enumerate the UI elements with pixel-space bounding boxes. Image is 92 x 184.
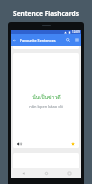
- button[interactable]: Play audio: [15, 140, 22, 147]
- staticText: Favourite Sentences: [20, 38, 56, 43]
- staticText: นั่นเป็นข่าวดี: [32, 93, 61, 101]
- button[interactable]: Recents: [58, 168, 81, 178]
- button[interactable]: Back: [11, 168, 35, 178]
- button[interactable]: นั่นเป็นข่าวดี: [13, 53, 79, 148]
- button[interactable]: Home: [35, 168, 58, 178]
- button[interactable]: Back: [11, 34, 18, 46]
- button[interactable]: Search: [63, 34, 72, 46]
- staticText: nân bpen kàao dii: [29, 104, 63, 109]
- staticText: Sentence Flashcards: [13, 9, 79, 18]
- button[interactable]: Menu: [72, 34, 81, 46]
- staticText: 12:09: [72, 30, 80, 34]
- button[interactable]: Favourite: [69, 140, 76, 147]
